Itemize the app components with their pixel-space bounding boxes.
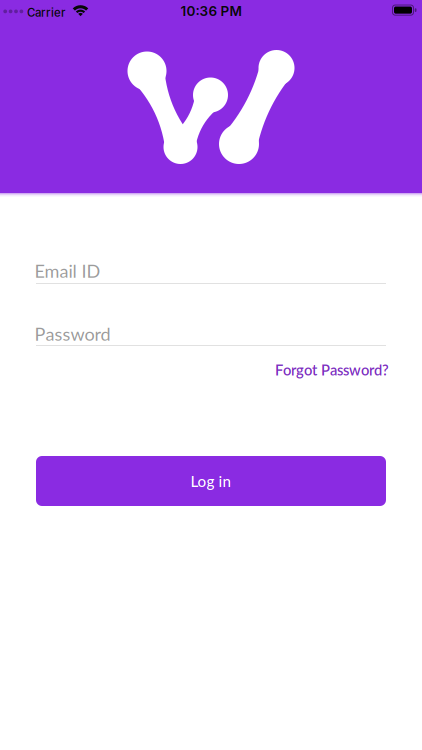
staticText: 10:36 PM [180, 3, 241, 19]
button[interactable]: Log in [36, 456, 386, 506]
staticText: Forgot Password? [275, 361, 389, 379]
button[interactable]: Forgot Password? [275, 361, 389, 379]
staticText: Email ID [34, 260, 100, 282]
button[interactable]: Password [36, 323, 386, 348]
staticText: Password [34, 323, 110, 345]
staticText: Carrier [27, 6, 65, 19]
button[interactable]: Email ID [36, 260, 386, 285]
staticText: Log in [190, 472, 231, 490]
